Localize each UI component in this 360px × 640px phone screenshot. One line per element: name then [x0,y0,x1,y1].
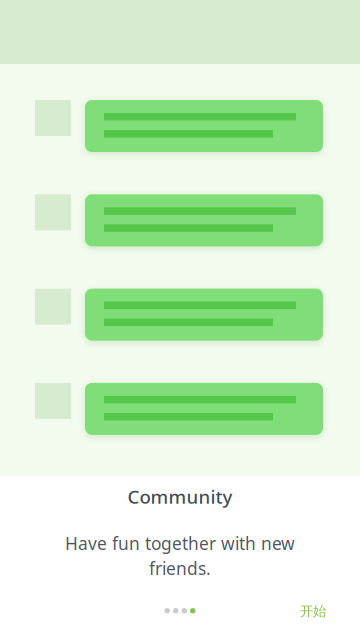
staticText: friends. [149,557,211,580]
staticText: Have fun together with new [65,532,295,555]
staticText: 开始 [300,603,326,619]
button[interactable]: 开始 [283,593,343,629]
staticText: Community [127,484,232,509]
